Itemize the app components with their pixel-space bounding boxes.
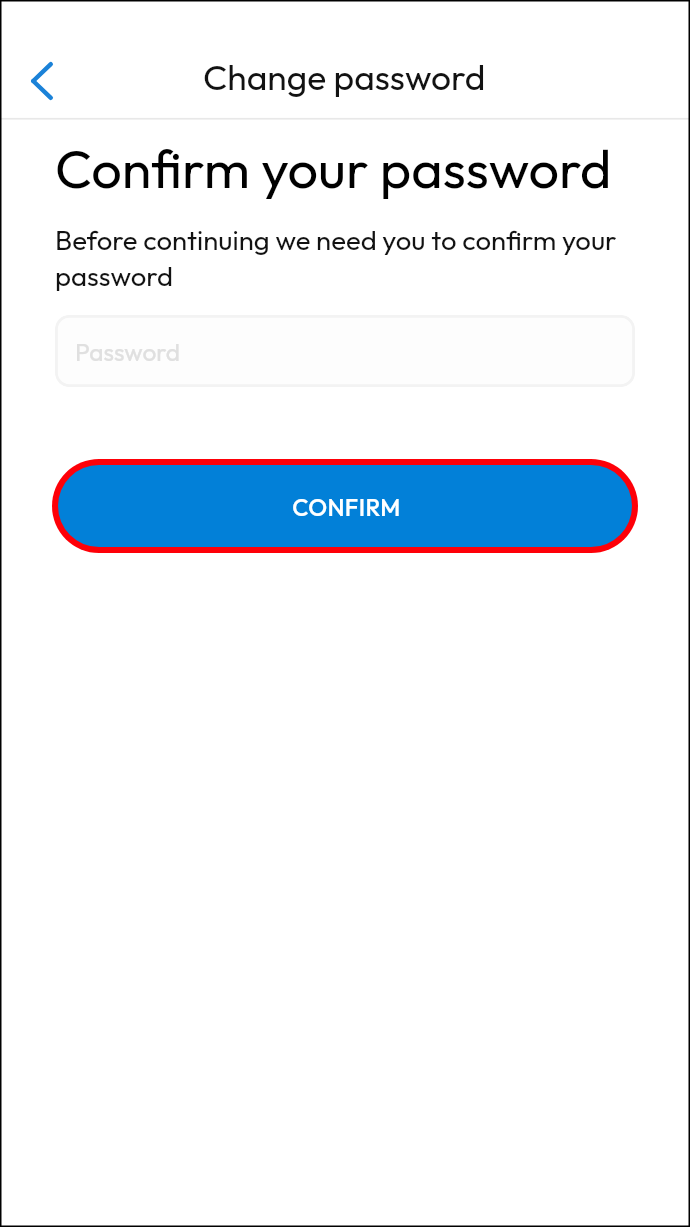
staticText: Password bbox=[75, 336, 180, 367]
button[interactable]: Password bbox=[55, 315, 635, 387]
button[interactable]: Back bbox=[12, 51, 72, 111]
staticText: CONFIRM bbox=[292, 492, 401, 522]
staticText: Before continuing we need you to confirm… bbox=[55, 222, 640, 294]
staticText: Change password bbox=[203, 55, 486, 100]
button[interactable]: CONFIRM bbox=[58, 465, 632, 547]
staticText: Confirm your password bbox=[55, 134, 612, 202]
